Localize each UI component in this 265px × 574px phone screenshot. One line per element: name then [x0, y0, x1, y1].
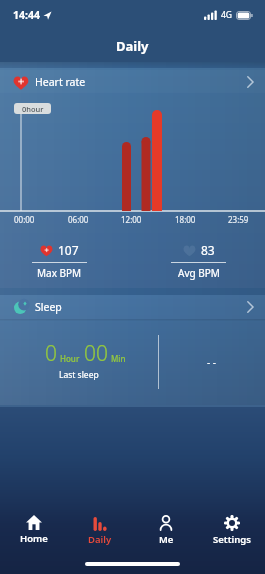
- button[interactable]: Sleep: [0, 295, 265, 319]
- staticText: Hour: [60, 353, 80, 364]
- staticText: Heart rate: [35, 75, 86, 89]
- staticText: 23:59: [228, 214, 249, 225]
- staticText: Max BPM: [37, 266, 82, 280]
- staticText: - -: [207, 355, 217, 369]
- staticText: Last sleep: [59, 369, 99, 381]
- staticText: 18:00: [175, 214, 196, 225]
- button[interactable]: Daily: [67, 508, 133, 558]
- staticText: Me: [159, 533, 174, 546]
- button[interactable]: Settings: [199, 508, 265, 558]
- button[interactable]: Heart rate: [0, 70, 265, 93]
- staticText: 00: [84, 339, 108, 368]
- staticText: 06:00: [68, 214, 89, 225]
- staticText: Sleep: [35, 300, 62, 314]
- staticText: Home: [20, 532, 48, 545]
- staticText: 12:00: [121, 214, 142, 225]
- staticText: Daily: [88, 533, 112, 546]
- staticText: 0: [45, 339, 57, 368]
- button[interactable]: Me: [133, 508, 199, 558]
- staticText: Avg BPM: [178, 266, 220, 280]
- staticText: 14:44: [13, 8, 40, 22]
- staticText: Min: [111, 353, 126, 364]
- staticText: 107: [58, 242, 79, 258]
- staticText: 4G: [221, 9, 233, 21]
- button[interactable]: Home: [0, 508, 67, 558]
- staticText: 83: [201, 242, 215, 258]
- staticText: 00:00: [14, 214, 35, 225]
- staticText: Settings: [213, 533, 251, 546]
- staticText: Daily: [116, 37, 149, 55]
- staticText: 0hour: [22, 104, 44, 114]
